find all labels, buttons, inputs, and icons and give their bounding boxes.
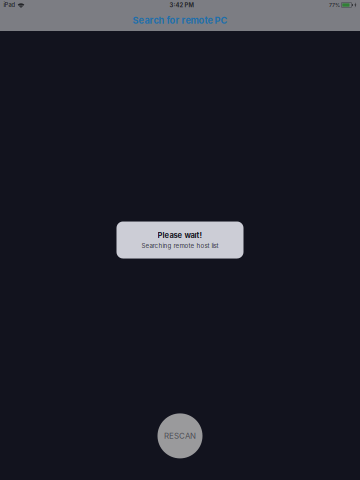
button[interactable]: Search for remote PC [0,10,360,31]
staticText: RESCAN [164,431,196,441]
staticText: Searching remote host list [141,242,218,249]
staticText: iPad [4,1,16,8]
button[interactable]: RESCAN [157,413,202,458]
staticText: 3:42 PM [169,1,193,9]
staticText: Please wait! [157,231,202,240]
staticText: 77% [329,2,340,8]
staticText: Search for remote PC [132,15,227,26]
